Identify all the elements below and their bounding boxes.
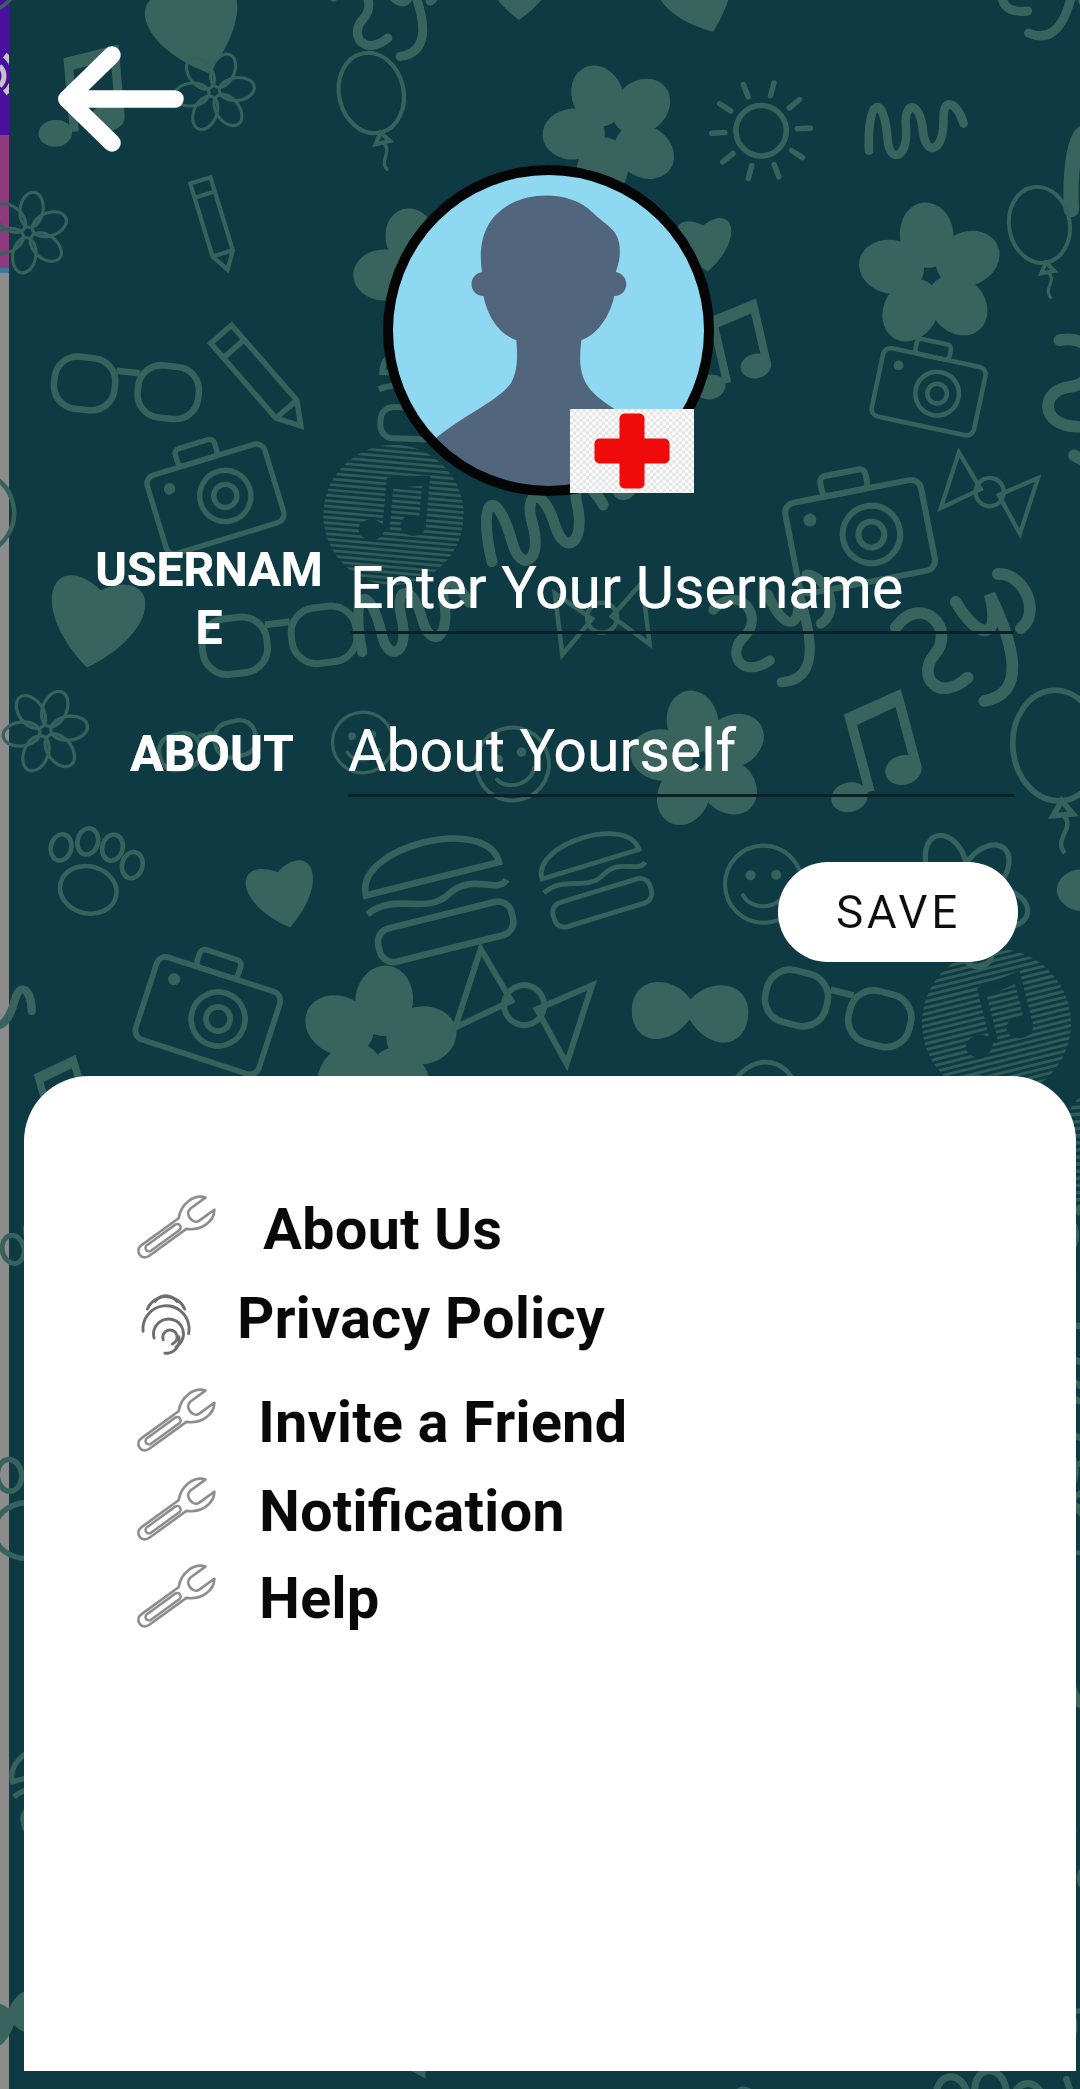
staticText: Enter Your Username xyxy=(350,553,904,622)
staticText: About Us xyxy=(263,1195,503,1263)
button[interactable]: About Us xyxy=(127,1183,847,1275)
button[interactable]: Help xyxy=(127,1552,847,1644)
staticText: Notification xyxy=(259,1477,565,1545)
staticText: USERNAME xyxy=(94,541,324,656)
button[interactable]: Invite a Friend xyxy=(127,1376,847,1468)
button[interactable]: SAVE xyxy=(778,862,1018,962)
staticText: About Yourself xyxy=(348,716,737,785)
staticText: Help xyxy=(259,1564,380,1632)
staticText: SAVE xyxy=(836,885,961,939)
button[interactable]: Notification xyxy=(127,1465,847,1557)
button[interactable]: Back xyxy=(40,30,190,170)
button[interactable]: Privacy Policy xyxy=(127,1272,847,1364)
button[interactable]: Change profile photo xyxy=(570,409,694,493)
staticText: ABOUT xyxy=(130,725,294,784)
staticText: Privacy Policy xyxy=(237,1284,605,1352)
staticText: Invite a Friend xyxy=(258,1388,628,1456)
